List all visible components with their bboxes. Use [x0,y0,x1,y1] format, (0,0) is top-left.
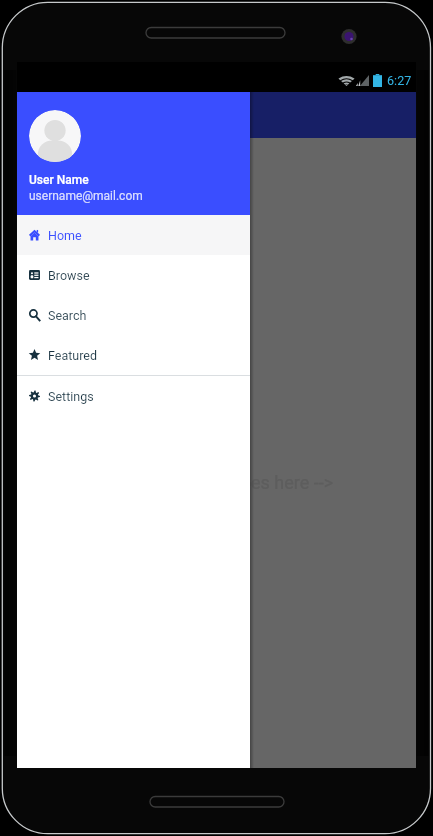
staticText: Content goes here --> [163,472,334,493]
staticText: 6:27 [387,73,412,88]
staticText: User Name [29,173,89,187]
staticText: Browse [48,268,90,283]
button[interactable]: Open navigation drawer [31,102,57,128]
button[interactable]: Home [17,215,250,255]
button[interactable]: Featured [17,335,250,375]
staticText: Settings [48,389,94,404]
button[interactable]: Browse [17,255,250,295]
staticText: Home [48,228,82,243]
staticText: Featured [48,348,97,363]
button[interactable]: Search [17,295,250,335]
staticText: Nav Drawer [77,105,165,125]
staticText: Search [48,308,87,323]
staticText: username@mail.com [29,189,143,203]
button[interactable]: Settings [17,376,250,416]
